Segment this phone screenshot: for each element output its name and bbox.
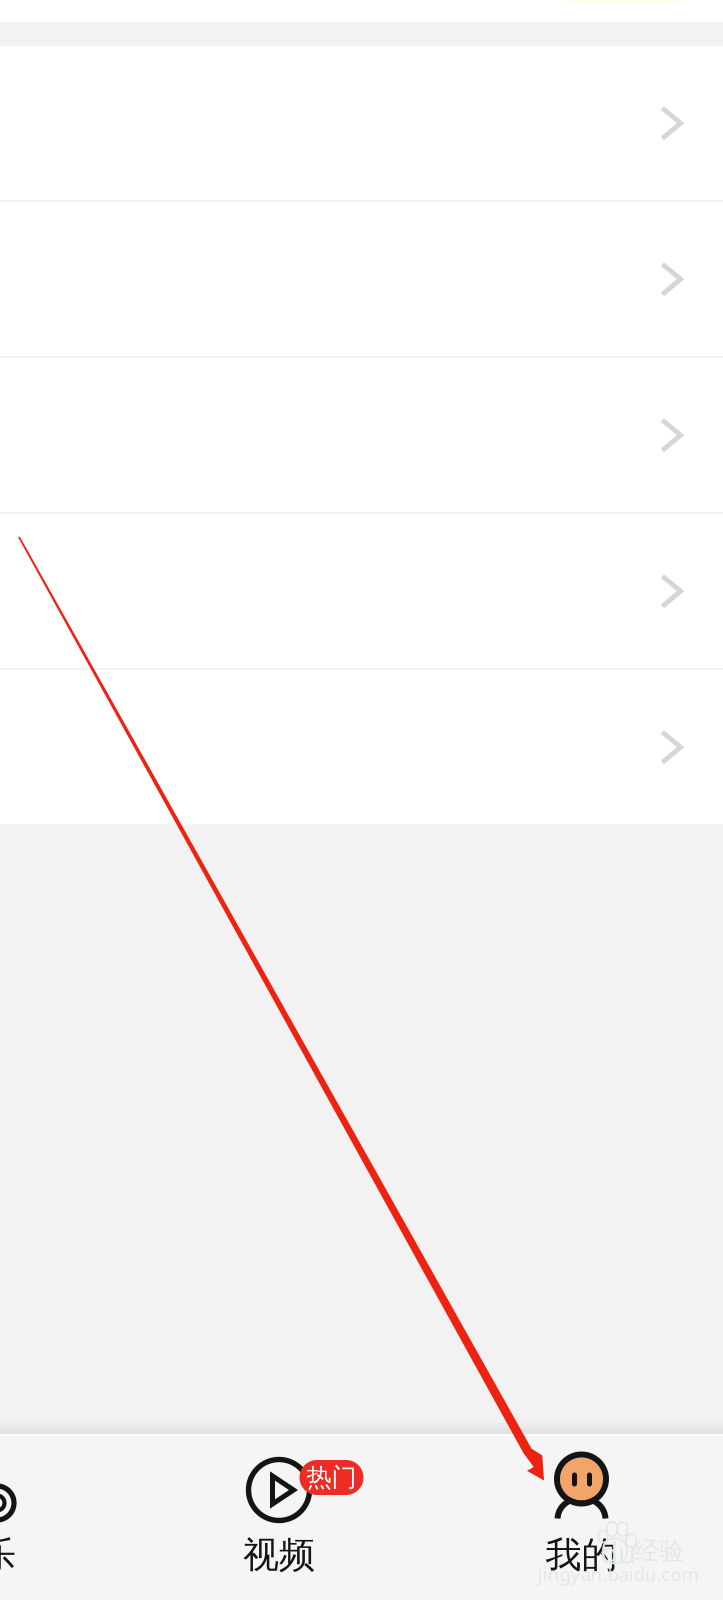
button[interactable] (0, 670, 723, 824)
staticText: 热门 (306, 1462, 356, 1493)
staticText: 音乐 (0, 1533, 16, 1577)
staticText: 经验 (634, 1535, 684, 1566)
staticText: jingyan.baidu.com (537, 1562, 698, 1586)
staticText: 我的 (545, 1533, 617, 1577)
button[interactable] (0, 514, 723, 668)
button[interactable]: 我的 (461, 1436, 701, 1600)
staticText: 视频 (243, 1533, 315, 1577)
staticText: du (600, 1532, 636, 1571)
button[interactable]: 音乐 (0, 1436, 117, 1600)
button[interactable]: 视频 (159, 1436, 399, 1600)
